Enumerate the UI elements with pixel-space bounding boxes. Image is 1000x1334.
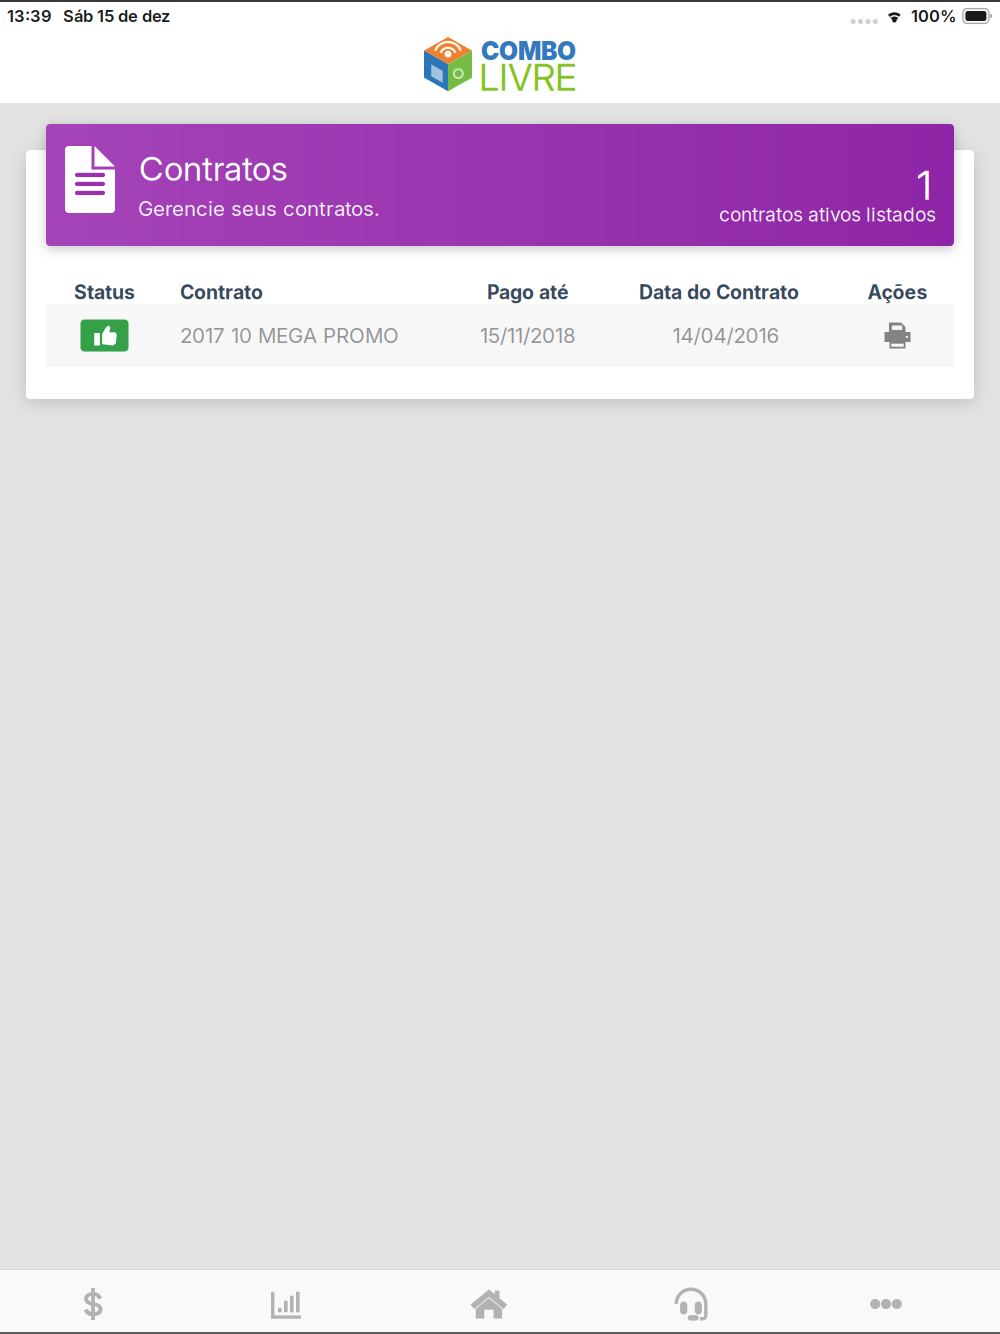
button[interactable]: Consumo — [193, 1270, 393, 1332]
staticText: Status — [74, 280, 135, 304]
staticText: 14/04/2016 — [672, 323, 779, 348]
staticText: COMBO — [481, 36, 576, 66]
staticText: 1 — [917, 161, 932, 209]
button[interactable]: Atendimento — [593, 1270, 793, 1332]
button[interactable]: Início — [393, 1270, 593, 1332]
staticText: 13:39 — [7, 6, 52, 26]
staticText: 15/11/2018 — [480, 323, 576, 348]
staticText: Data do Contrato — [639, 280, 799, 304]
staticText: Contratos — [139, 148, 288, 189]
staticText: contratos ativos listados — [719, 203, 936, 226]
staticText: Gerencie seus contratos. — [138, 196, 380, 221]
staticText: Pago até — [487, 280, 569, 304]
staticText: Contrato — [180, 280, 263, 304]
staticText: 2017 10 MEGA PROMO — [180, 323, 399, 348]
staticText: LIVRE — [479, 55, 577, 100]
button[interactable]: 2017 10 MEGA PROMO — [46, 304, 954, 367]
button[interactable]: Financeiro — [0, 1270, 193, 1332]
button[interactable]: Mais — [793, 1270, 993, 1332]
staticText: 100% — [911, 6, 957, 26]
staticText: Ações — [867, 280, 927, 304]
staticText: Sáb 15 de dez — [63, 6, 170, 26]
